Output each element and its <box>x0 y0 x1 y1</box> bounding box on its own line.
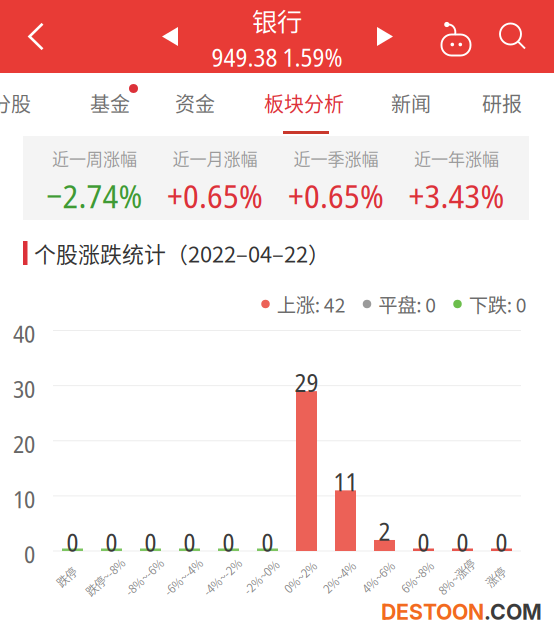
staticText: 20 <box>13 427 35 460</box>
staticText: 949.38 1.59% <box>211 40 342 74</box>
button[interactable]: Search <box>491 0 535 73</box>
staticText: -6%~-4% <box>159 569 207 585</box>
button[interactable]: 资金 <box>166 90 224 116</box>
button[interactable]: 研报 <box>473 90 531 116</box>
staticText: 跌停~-8% <box>81 569 130 585</box>
staticText: -4%~-2% <box>198 569 246 585</box>
staticText: 6%~8% <box>397 569 437 585</box>
button[interactable]: Next sector <box>363 0 407 73</box>
staticText: 基金 <box>90 88 130 117</box>
staticText: 0 <box>66 525 78 559</box>
staticText: 10 <box>13 482 35 515</box>
staticText: 8%~涨停 <box>434 569 479 585</box>
staticText: 0 <box>24 538 35 570</box>
button[interactable]: 分股 <box>0 90 40 116</box>
staticText: 分股 <box>0 88 31 117</box>
staticText: 30 <box>13 372 35 405</box>
staticText: 涨停 <box>484 569 506 585</box>
staticText: 跌停 <box>55 569 77 585</box>
staticText: 近一周涨幅 <box>52 146 137 171</box>
staticText: .COM <box>484 599 542 625</box>
staticText: 新闻 <box>391 88 431 117</box>
staticText: +3.43% <box>408 173 504 218</box>
staticText: -8%~-6% <box>120 569 168 585</box>
staticText: 研报 <box>482 88 522 117</box>
staticText: 个股涨跌统计（2022–04–22） <box>34 237 330 269</box>
staticText: 0%~2% <box>280 569 320 585</box>
staticText: DESTOON <box>381 599 484 625</box>
staticText: 0 <box>495 525 507 559</box>
staticText: 近一季涨幅 <box>293 146 378 171</box>
staticText: +0.65% <box>167 173 263 218</box>
staticText: 0 <box>105 525 117 559</box>
staticText: 0 <box>222 525 234 559</box>
button[interactable]: 新闻 <box>382 90 440 116</box>
button[interactable]: Back <box>12 0 60 73</box>
staticText: 2%~4% <box>319 569 359 585</box>
button[interactable]: Previous sector <box>148 0 192 73</box>
staticText: 0 <box>417 525 429 559</box>
button[interactable]: Assistant <box>434 0 478 73</box>
staticText: 11 <box>333 464 357 499</box>
staticText: 上涨: 42 <box>277 290 346 318</box>
staticText: 下跌: 0 <box>469 290 527 318</box>
button[interactable]: 基金 <box>81 90 139 116</box>
staticText: 资金 <box>175 88 215 117</box>
staticText: 0 <box>144 525 156 559</box>
staticText: 银行 <box>252 2 302 39</box>
staticText: +0.65% <box>288 173 384 218</box>
staticText: 40 <box>13 317 35 350</box>
staticText: 0 <box>456 525 468 559</box>
staticText: 0 <box>261 525 273 559</box>
staticText: 4%~6% <box>358 569 398 585</box>
staticText: 0 <box>183 525 195 559</box>
staticText: -2%~0% <box>239 569 283 585</box>
staticText: 近一年涨幅 <box>414 146 499 171</box>
button[interactable]: 板块分析 <box>256 90 352 116</box>
staticText: 2 <box>378 514 390 548</box>
staticText: −2.74% <box>46 173 142 218</box>
staticText: 平盘: 0 <box>378 290 436 318</box>
staticText: 板块分析 <box>264 88 344 117</box>
staticText: 近一月涨幅 <box>172 146 257 171</box>
staticText: 29 <box>294 365 318 399</box>
